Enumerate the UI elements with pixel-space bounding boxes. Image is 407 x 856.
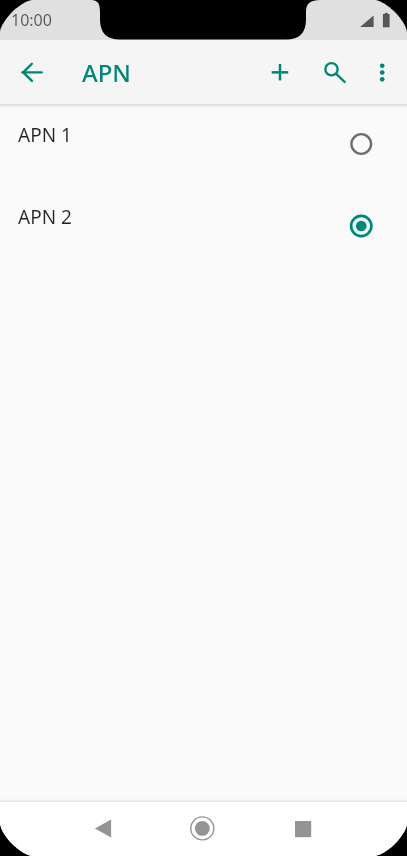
staticText: 10:00 <box>11 9 52 31</box>
button[interactable]: Back <box>75 802 131 856</box>
button[interactable]: APN 2 <box>0 186 407 267</box>
button[interactable]: Home <box>175 802 231 856</box>
button[interactable]: APN 1 <box>0 104 407 185</box>
staticText: APN <box>82 56 131 89</box>
button[interactable]: Navigate up <box>8 48 56 96</box>
button[interactable]: Search <box>308 48 356 96</box>
button[interactable]: More options <box>360 48 404 92</box>
button[interactable]: Add APN <box>256 48 304 96</box>
button[interactable]: Recent apps <box>275 802 331 856</box>
staticText: APN 2 <box>18 204 72 230</box>
staticText: APN 1 <box>18 122 72 148</box>
